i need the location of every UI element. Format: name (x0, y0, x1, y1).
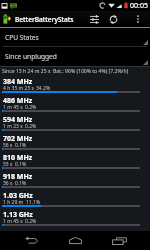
staticText: 810 MHz (3, 153, 33, 163)
button[interactable]: 1.03 GHz (0, 189, 150, 208)
button[interactable]: App icon (0, 11, 13, 27)
staticText: 1.03 GHz (3, 191, 33, 201)
staticText: 1 m 23 s (3, 123, 23, 130)
staticText: 0.2% (25, 104, 37, 111)
button[interactable]: 918 MHz (0, 170, 150, 189)
button[interactable]: 594 MHz (0, 113, 150, 132)
staticText: 0.2% (25, 218, 37, 225)
staticText: 1.13 GHz (3, 210, 33, 220)
button[interactable]: 486 MHz (0, 94, 150, 113)
staticText: 594 MHz (3, 115, 33, 125)
button[interactable]: Recents (100, 231, 138, 250)
staticText: 56 s (3, 142, 13, 149)
staticText: CPU States (5, 33, 39, 42)
staticText: 0.1% (15, 161, 27, 168)
staticText: 1 m 45 s (3, 218, 23, 225)
button[interactable]: Filter (85, 11, 104, 27)
staticText: BetterBatteryStats (15, 15, 74, 24)
button[interactable]: Since unplugged (0, 47, 150, 66)
staticText: 1 m 45 s (3, 104, 23, 111)
button[interactable]: CPU States (0, 28, 150, 46)
staticText: 384 MHz (3, 77, 33, 87)
staticText: 0.2% (25, 123, 37, 130)
staticText: 1 h 29 m (3, 199, 24, 206)
button[interactable]: 1.13 GHz (0, 208, 150, 227)
staticText: 486 MHz (3, 96, 33, 106)
button[interactable]: Refresh (104, 11, 123, 27)
button[interactable]: 702 MHz (0, 132, 150, 151)
staticText: 702 MHz (3, 134, 33, 144)
button[interactable]: Home (56, 231, 94, 250)
staticText: 34.2% (36, 85, 51, 92)
staticText: 55 s (3, 161, 13, 168)
staticText: Since 13 h 24 m 25 s Bat.: 96% (100% to … (2, 68, 129, 75)
button[interactable]: Back (13, 231, 50, 250)
button[interactable]: 384 MHz (0, 75, 150, 94)
staticText: 0.1% (15, 142, 27, 149)
button[interactable]: 810 MHz (0, 151, 150, 170)
staticText: 0.1% (15, 180, 27, 187)
staticText: Since unplugged (5, 52, 57, 61)
button[interactable]: More options (129, 11, 147, 27)
staticText: 918 MHz (3, 172, 33, 182)
staticText: 11.1% (26, 199, 41, 206)
staticText: 4 h 35 m 25 s (3, 85, 34, 92)
staticText: 36 s (3, 180, 13, 187)
staticText: 00:05 (130, 1, 148, 11)
